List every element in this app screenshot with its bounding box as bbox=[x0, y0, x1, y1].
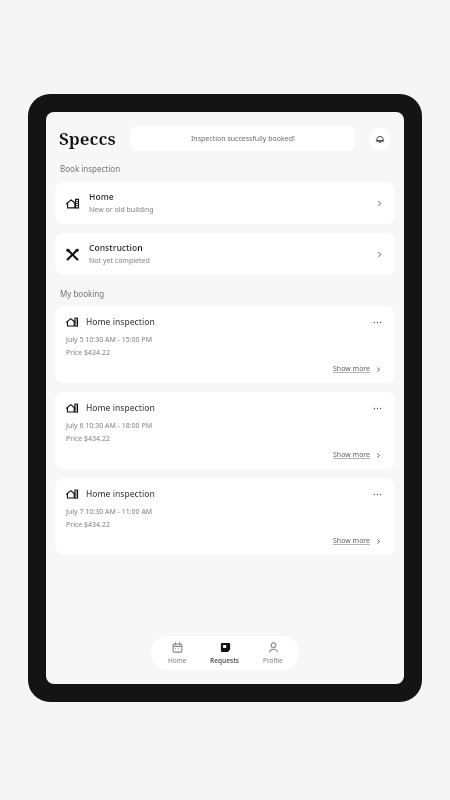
staticText: Price $434.22 bbox=[66, 520, 110, 530]
staticText: July 6 10:30 AM - 18:00 PM bbox=[66, 421, 152, 431]
button[interactable]: Home inspection bbox=[55, 392, 395, 469]
button[interactable]: Notifications bbox=[369, 128, 391, 150]
staticText: Home inspection bbox=[86, 488, 370, 500]
button[interactable]: Home inspection bbox=[55, 306, 395, 383]
button[interactable]: Profile bbox=[251, 636, 295, 670]
button[interactable]: Construction bbox=[55, 233, 395, 275]
button[interactable]: More options bbox=[370, 315, 384, 329]
button[interactable]: Home bbox=[55, 182, 395, 224]
staticText: Inspection successfully booked! bbox=[191, 134, 295, 144]
button[interactable]: Home bbox=[155, 636, 199, 670]
staticText: Home inspection bbox=[86, 402, 370, 414]
staticText: Requests bbox=[210, 656, 240, 665]
button[interactable]: More options bbox=[370, 487, 384, 501]
button[interactable]: Requests bbox=[203, 636, 247, 670]
staticText: Price $434.22 bbox=[66, 434, 110, 444]
staticText: Show more bbox=[333, 364, 371, 374]
staticText: Price $434.22 bbox=[66, 348, 110, 358]
button[interactable]: Show more bbox=[331, 534, 384, 548]
staticText: Not yet completed bbox=[89, 256, 150, 266]
staticText: My booking bbox=[60, 288, 105, 299]
staticText: Home bbox=[168, 656, 187, 665]
button[interactable]: Show more bbox=[331, 362, 384, 376]
staticText: July 5 10:30 AM - 15:00 PM bbox=[66, 335, 152, 345]
staticText: Profile bbox=[263, 656, 283, 665]
staticText: July 7 10:30 AM - 11:00 AM bbox=[66, 507, 153, 517]
button[interactable]: Show more bbox=[331, 448, 384, 462]
staticText: Book inspection bbox=[60, 163, 121, 174]
button[interactable]: Inspection successfully booked! bbox=[130, 126, 355, 151]
staticText: Construction bbox=[89, 242, 143, 254]
button[interactable]: Home inspection bbox=[55, 478, 395, 555]
staticText: Home inspection bbox=[86, 316, 370, 328]
staticText: Speccs bbox=[59, 127, 116, 150]
button[interactable]: More options bbox=[370, 401, 384, 415]
staticText: Show more bbox=[333, 450, 371, 460]
staticText: Show more bbox=[333, 536, 371, 546]
staticText: Home bbox=[89, 191, 114, 203]
staticText: New or old building bbox=[89, 205, 154, 215]
